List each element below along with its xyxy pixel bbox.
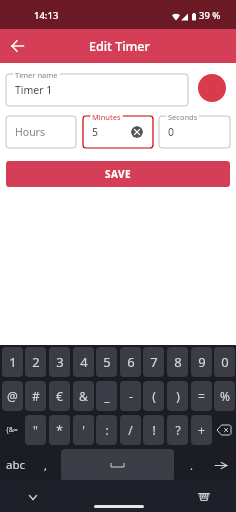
staticText: ! (152, 422, 156, 438)
staticText: ' (82, 422, 85, 438)
button[interactable]: _ (96, 381, 117, 411)
staticText: abc (6, 457, 26, 473)
button[interactable]: = (191, 381, 212, 411)
button[interactable]: ( (143, 381, 164, 411)
staticText: {&= (6, 425, 18, 435)
button[interactable]: / (120, 415, 141, 445)
staticText: Hours (15, 125, 45, 139)
button[interactable]: 8 (167, 347, 188, 377)
staticText: 0 (221, 353, 229, 371)
button[interactable]: More symbols (0, 415, 24, 445)
staticText: Seconds (168, 112, 198, 122)
staticText: - (129, 388, 133, 404)
button[interactable]: & (73, 381, 94, 411)
staticText: € (56, 388, 63, 404)
button[interactable]: 9 (191, 347, 212, 377)
staticText: 1 (9, 353, 17, 371)
button[interactable]: ) (167, 381, 188, 411)
button[interactable]: 3 (49, 347, 70, 377)
staticText: * (56, 422, 63, 438)
staticText: Timer 1 (15, 83, 53, 97)
staticText: / (128, 422, 133, 438)
staticText: , (44, 458, 47, 473)
button[interactable]: Space (61, 449, 174, 481)
button[interactable]: # (25, 381, 46, 411)
button[interactable]: Back (5, 34, 29, 58)
button[interactable]: Change keyboard (195, 488, 213, 506)
button[interactable]: 2 (25, 347, 46, 377)
button[interactable]: Period (181, 449, 201, 481)
button[interactable]: Hide keyboard (24, 489, 41, 506)
button[interactable]: * (49, 415, 70, 445)
staticText: & (79, 388, 88, 404)
staticText: SAVE (105, 167, 132, 181)
staticText: 0 (168, 125, 175, 139)
button[interactable]: : (96, 415, 117, 445)
button[interactable]: ' (73, 415, 94, 445)
staticText: ? (175, 422, 181, 438)
staticText: 3 (56, 353, 64, 371)
staticText: ( (152, 388, 156, 404)
button[interactable]: Comma (35, 449, 55, 481)
staticText: = (198, 388, 205, 404)
staticText: % (220, 388, 230, 404)
staticText: 5 (103, 353, 111, 371)
staticText: Minutes (92, 112, 121, 122)
button[interactable]: @ (2, 381, 23, 411)
staticText: 14:13 (34, 9, 59, 22)
staticText: Timer name (15, 70, 58, 80)
staticText: Edit Timer (89, 38, 150, 55)
staticText: 4 (80, 353, 88, 371)
button[interactable]: 4 (73, 347, 94, 377)
button[interactable]: € (49, 381, 70, 411)
staticText: # (32, 388, 40, 404)
staticText: 2 (32, 353, 40, 371)
button[interactable]: abc (3, 449, 28, 481)
button[interactable]: Enter (209, 449, 233, 481)
button[interactable]: 7 (143, 347, 164, 377)
button[interactable]: " (25, 415, 46, 445)
staticText: 39 % (199, 9, 221, 22)
staticText: : (105, 422, 109, 438)
button[interactable]: ! (143, 415, 164, 445)
button[interactable]: % (214, 381, 235, 411)
button[interactable]: ? (167, 415, 188, 445)
button[interactable]: Clear (131, 126, 143, 138)
staticText: 9 (198, 353, 206, 371)
button[interactable]: Pick colour (198, 74, 226, 102)
button[interactable]: Backspace (212, 415, 236, 445)
button[interactable]: 6 (120, 347, 141, 377)
staticText: + (198, 422, 205, 438)
staticText: 7 (150, 353, 158, 371)
staticText: _ (104, 388, 110, 404)
staticText: . (190, 458, 193, 473)
staticText: ) (176, 388, 180, 404)
button[interactable]: 1 (2, 347, 23, 377)
staticText: @ (7, 388, 18, 404)
button[interactable]: 5 (96, 347, 117, 377)
button[interactable]: - (120, 381, 141, 411)
staticText: 5 (92, 125, 99, 139)
staticText: 8 (174, 353, 182, 371)
button[interactable]: SAVE (6, 161, 230, 187)
staticText: " (33, 422, 38, 438)
button[interactable]: 0 (214, 347, 235, 377)
button[interactable]: + (191, 415, 212, 445)
staticText: 6 (127, 353, 135, 371)
